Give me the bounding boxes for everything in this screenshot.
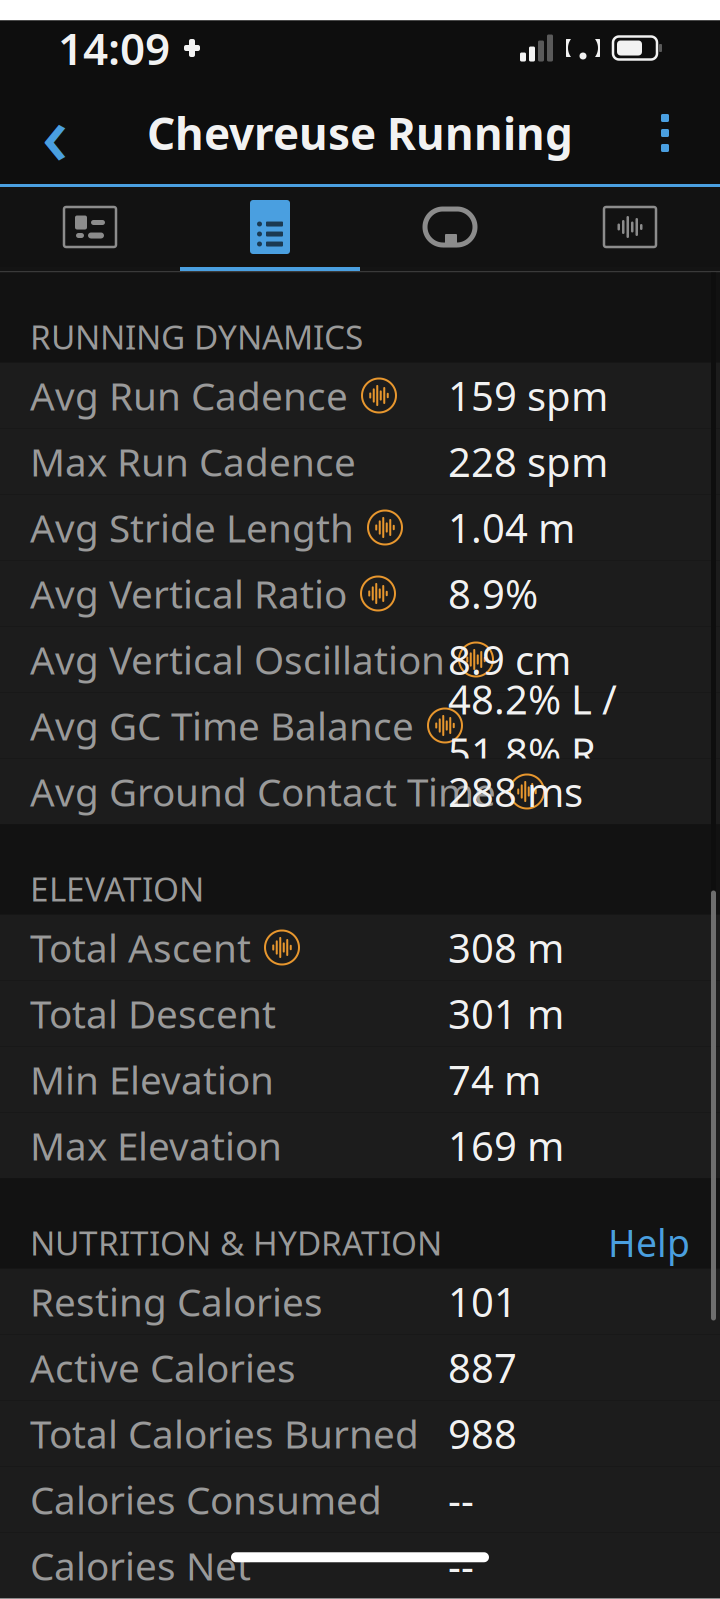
staticText: Avg Ground Contact Time — [30, 766, 496, 817]
staticText: Help — [608, 1218, 690, 1267]
button[interactable]: Charts — [540, 187, 720, 271]
staticText: Avg Stride Length — [30, 502, 354, 553]
staticText: 301 m — [448, 987, 564, 1040]
staticText: ELEVATION — [30, 866, 204, 911]
staticText: RUNNING DYNAMICS — [30, 314, 363, 359]
staticText: 8.9 cm — [448, 633, 571, 686]
button[interactable]: Max Run Cadence — [0, 428, 720, 494]
button[interactable]: More options — [628, 96, 702, 170]
staticText: 14:09 — [58, 19, 170, 77]
button[interactable]: Avg Vertical Oscillation — [0, 626, 720, 692]
button[interactable]: Avg GC Time Balance — [0, 692, 720, 758]
staticText: Avg Vertical Oscillation — [30, 634, 445, 685]
staticText: 8.9% — [448, 567, 538, 620]
button[interactable]: Min Elevation — [0, 1046, 720, 1112]
button[interactable]: Calories Consumed — [0, 1466, 720, 1532]
staticText: 169 m — [448, 1119, 564, 1172]
button[interactable]: Back — [18, 96, 92, 170]
staticText: Avg GC Time Balance — [30, 700, 414, 751]
staticText: Avg Vertical Ratio — [30, 568, 347, 619]
button[interactable]: Avg Vertical Ratio — [0, 560, 720, 626]
button[interactable]: Avg Run Cadence — [0, 362, 720, 428]
button[interactable]: Calories Net — [0, 1532, 720, 1598]
staticText: Min Elevation — [30, 1054, 274, 1105]
staticText: Active Calories — [30, 1342, 296, 1393]
staticText: -- — [448, 1473, 474, 1526]
staticText: 887 — [448, 1341, 517, 1394]
staticText: Total Ascent — [30, 922, 251, 973]
staticText: -- — [448, 1539, 474, 1592]
staticText: 288 ms — [448, 765, 583, 818]
button[interactable]: Total Calories Burned — [0, 1400, 720, 1466]
button[interactable]: Avg Stride Length — [0, 494, 720, 560]
staticText: 74 m — [448, 1053, 541, 1106]
staticText: 101 — [448, 1275, 517, 1328]
button[interactable]: Map — [0, 187, 180, 271]
staticText: ‹ — [41, 78, 68, 188]
staticText: Max Elevation — [30, 1120, 282, 1171]
staticText: Calories Consumed — [30, 1474, 382, 1525]
staticText: Calories Net — [30, 1540, 251, 1591]
button[interactable]: Resting Calories — [0, 1268, 720, 1334]
staticText: 308 m — [448, 921, 564, 974]
staticText: Max Run Cadence — [30, 436, 356, 487]
button[interactable]: Avg Ground Contact Time — [0, 758, 720, 824]
staticText: Resting Calories — [30, 1276, 323, 1327]
button[interactable]: Help — [608, 1218, 690, 1267]
staticText: Total Calories Burned — [30, 1408, 419, 1459]
staticText: NUTRITION & HYDRATION — [30, 1220, 442, 1265]
button[interactable]: Total Ascent — [0, 914, 720, 980]
staticText: 48.2% L / 51.8% R — [448, 672, 617, 779]
staticText: Total Descent — [30, 988, 276, 1039]
button[interactable]: Details — [180, 187, 360, 271]
staticText: 159 spm — [448, 369, 608, 422]
staticText: 988 — [448, 1407, 517, 1460]
staticText: 1.04 m — [448, 501, 575, 554]
button[interactable]: Total Descent — [0, 980, 720, 1046]
button[interactable]: Max Elevation — [0, 1112, 720, 1178]
button[interactable]: Active Calories — [0, 1334, 720, 1400]
staticText: 228 spm — [448, 435, 608, 488]
button[interactable]: Laps — [360, 187, 540, 271]
staticText: Avg Run Cadence — [30, 370, 348, 421]
staticText: Chevreuse Running — [147, 104, 573, 162]
